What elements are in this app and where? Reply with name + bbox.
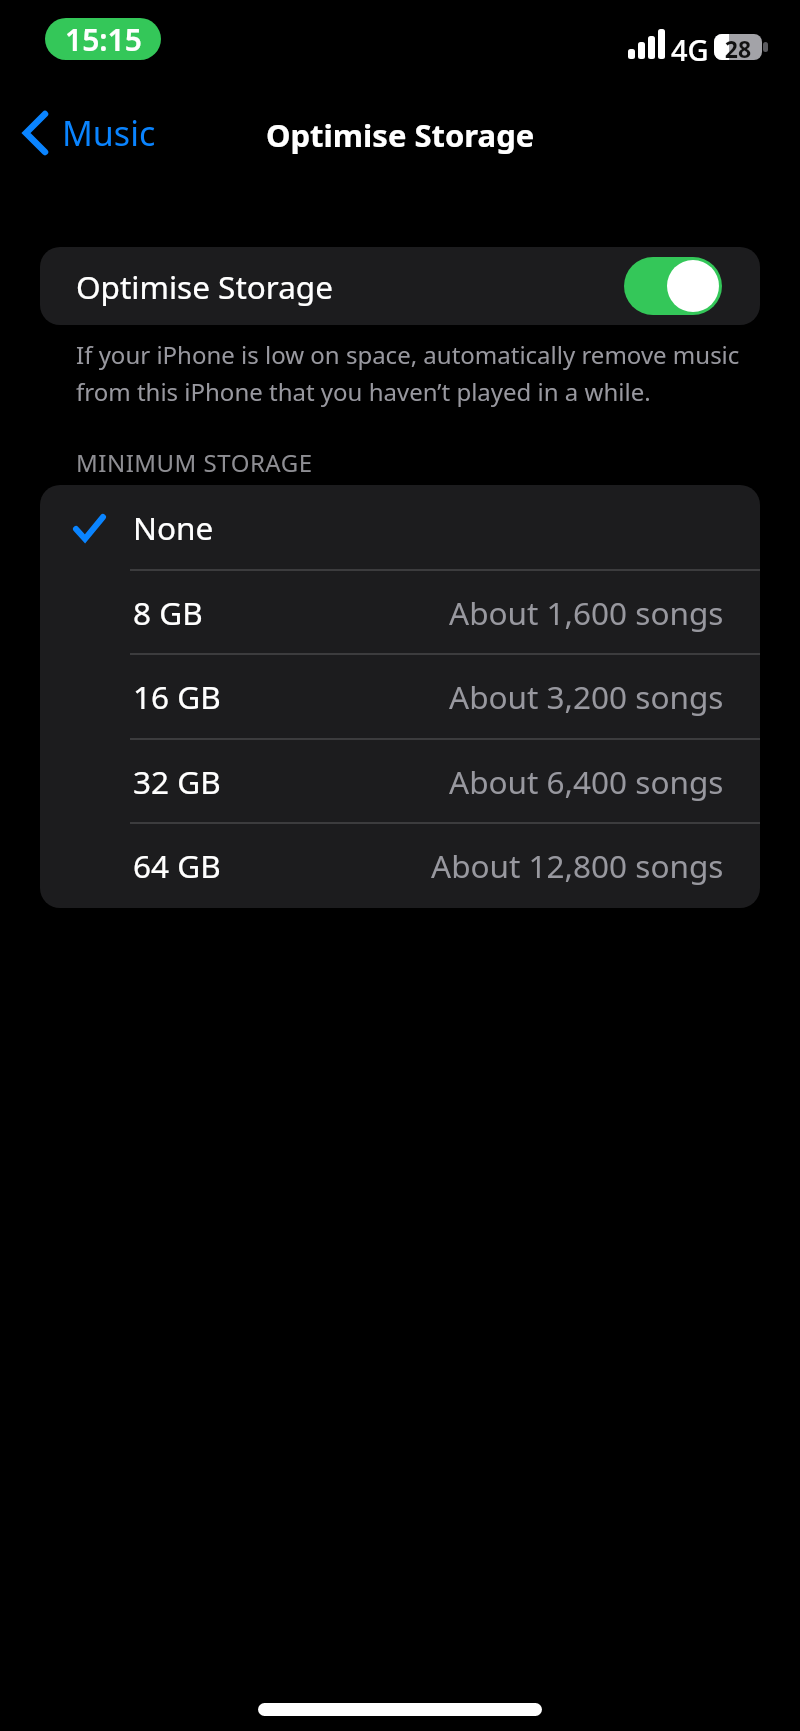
staticText: Music — [62, 110, 156, 156]
staticText: About 12,800 songs — [431, 844, 724, 887]
button[interactable]: 15:15 — [45, 18, 161, 60]
button[interactable]: Optimise Storage — [40, 247, 760, 325]
staticText: 16 GB — [133, 675, 221, 718]
staticText: 32 GB — [133, 760, 221, 803]
staticText: About 3,200 songs — [449, 675, 724, 718]
staticText: MINIMUM STORAGE — [76, 446, 313, 479]
staticText: About 6,400 songs — [449, 760, 724, 803]
staticText: Optimise Storage — [266, 114, 535, 156]
staticText: 28 — [714, 33, 762, 59]
button[interactable]: Music — [22, 110, 156, 156]
staticText: None — [133, 506, 214, 549]
staticText: 8 GB — [133, 591, 203, 634]
staticText: Optimise Storage — [76, 265, 334, 308]
staticText: 15:15 — [65, 19, 142, 60]
staticText: 4G — [671, 30, 709, 69]
button[interactable]: None — [40, 485, 760, 570]
button[interactable]: 32 GB — [40, 739, 760, 824]
staticText: 64 GB — [133, 844, 221, 887]
button[interactable]: 64 GB — [40, 823, 760, 908]
staticText: About 1,600 songs — [449, 591, 724, 634]
button[interactable]: 8 GB — [40, 570, 760, 655]
staticText: If your iPhone is low on space, automati… — [76, 338, 740, 408]
button[interactable]: 16 GB — [40, 654, 760, 739]
